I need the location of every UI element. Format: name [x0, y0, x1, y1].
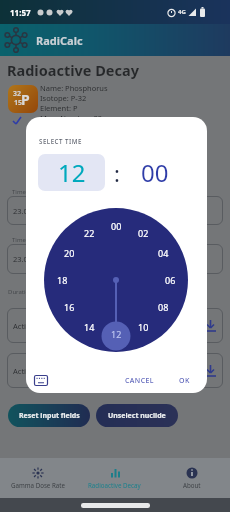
staticText: Activity — [13, 321, 39, 331]
staticText: Radioactive Decay — [88, 481, 141, 489]
staticText: 11:57 — [10, 7, 31, 18]
staticText: 10 — [138, 321, 149, 333]
button[interactable]: OK — [170, 373, 198, 389]
button[interactable]: 23.05.2024 — [7, 196, 223, 225]
staticText: Name: Phosphorus — [40, 83, 108, 93]
staticText: 04 — [158, 247, 169, 259]
button[interactable]: About — [153, 458, 230, 498]
staticText: Unselect nuclide — [108, 411, 166, 421]
staticText: Isotope: P-32 — [40, 93, 87, 103]
staticText: 20 — [64, 247, 75, 259]
staticText: Reset input fields — [19, 411, 80, 421]
staticText: 32 — [13, 89, 22, 99]
button[interactable]: CANCEL — [118, 373, 160, 389]
staticText: CANCEL — [125, 376, 154, 386]
staticText: 00 — [111, 220, 122, 232]
staticText: 06 — [165, 274, 176, 286]
button[interactable]: Radioactive Decay — [76, 458, 153, 498]
staticText: P — [21, 90, 30, 109]
staticText: 02 — [138, 227, 149, 239]
staticText: 12 — [58, 156, 86, 189]
staticText: Element: P — [40, 103, 78, 113]
staticText: 4G — [178, 8, 186, 16]
button[interactable]: Gamma Dose Rate — [0, 458, 76, 498]
staticText: 08 — [158, 301, 169, 313]
button[interactable]: 00 — [121, 154, 188, 191]
button[interactable]: Activity — [7, 353, 223, 388]
staticText: Time of measure — [12, 188, 60, 196]
staticText: : — [114, 158, 120, 188]
staticText: Activity — [13, 366, 39, 376]
button[interactable]: Unselect nuclide — [96, 404, 178, 427]
button[interactable]: 23.05.2024 — [7, 244, 223, 274]
staticText: Mass Number: 32 — [40, 113, 102, 123]
staticText: RadiCalc — [36, 33, 83, 48]
staticText: 22 — [84, 227, 95, 239]
button[interactable] — [34, 375, 48, 386]
staticText: SELECT TIME — [39, 137, 82, 145]
staticText: 16 — [64, 301, 75, 313]
button[interactable]: Reset input fields — [8, 404, 90, 427]
staticText: Duration — [8, 288, 33, 296]
staticText: 14 — [84, 321, 95, 333]
staticText: 15 — [14, 98, 23, 108]
staticText: 00 — [141, 156, 169, 189]
staticText: 23.05.2024 — [13, 206, 52, 216]
button[interactable]: Activity — [7, 308, 223, 343]
staticText: 23.05.2024 — [13, 254, 52, 264]
staticText: About — [183, 481, 201, 489]
staticText: Time of interest — [12, 236, 57, 244]
staticText: 12 — [111, 328, 122, 340]
staticText: 18 — [57, 274, 68, 286]
button[interactable]: 12 — [38, 154, 105, 191]
staticText: Gamma Dose Rate — [11, 481, 65, 489]
staticText: OK — [179, 376, 190, 386]
staticText: Radioactive Decay — [7, 60, 139, 80]
